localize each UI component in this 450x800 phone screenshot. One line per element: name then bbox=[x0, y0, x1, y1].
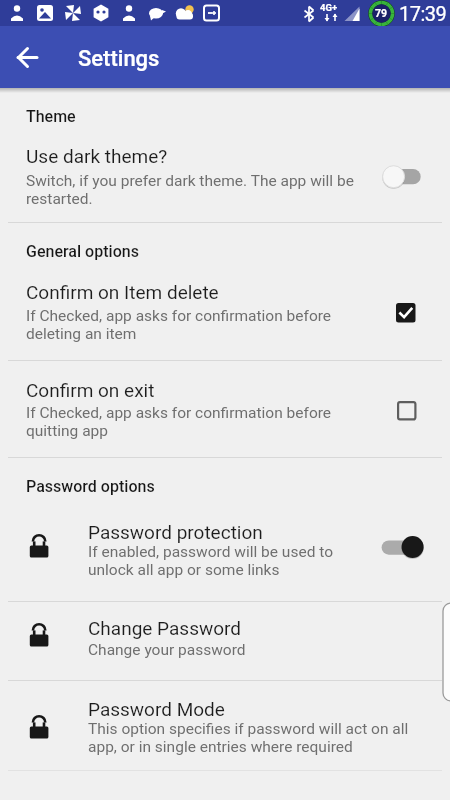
staticText: Password protection bbox=[88, 521, 263, 543]
staticText: General options bbox=[26, 242, 139, 261]
staticText: quitting app bbox=[26, 422, 108, 440]
staticText: app, or in single entries where required bbox=[88, 738, 353, 756]
staticText: restarted. bbox=[26, 190, 93, 208]
staticText: Confirm on Item delete bbox=[26, 281, 219, 303]
staticText: Settings bbox=[78, 46, 160, 72]
staticText: Switch, if you prefer dark theme. The ap… bbox=[26, 172, 354, 190]
button[interactable]: Password Mode bbox=[0, 680, 450, 770]
button[interactable]: Use dark theme? bbox=[0, 140, 450, 222]
staticText: deleting an item bbox=[26, 325, 137, 343]
staticText: 17:39 bbox=[399, 2, 447, 25]
staticText: Confirm on exit bbox=[26, 379, 155, 401]
staticText: Change Password bbox=[88, 617, 242, 639]
staticText: unlock all app or some links bbox=[88, 561, 280, 579]
staticText: Theme bbox=[26, 107, 76, 126]
button[interactable]: Confirm on exit bbox=[0, 360, 450, 457]
staticText: If Checked, app asks for confirmation be… bbox=[26, 307, 332, 325]
staticText: 4G+ bbox=[320, 2, 338, 13]
staticText: This option specifies if password will a… bbox=[88, 720, 409, 738]
button[interactable]: Password protection bbox=[0, 505, 450, 601]
button[interactable]: Confirm on Item delete bbox=[0, 262, 450, 360]
staticText: If Checked, app asks for confirmation be… bbox=[26, 404, 332, 422]
button[interactable] bbox=[4, 34, 50, 80]
staticText: Use dark theme? bbox=[26, 145, 168, 167]
staticText: If enabled, password will be used to bbox=[88, 543, 333, 561]
staticText: Change your password bbox=[88, 641, 246, 659]
staticText: Password options bbox=[26, 477, 155, 496]
staticText: Password Mode bbox=[88, 698, 225, 720]
button[interactable]: Change Password bbox=[0, 601, 450, 680]
staticText: 79 bbox=[375, 7, 388, 19]
